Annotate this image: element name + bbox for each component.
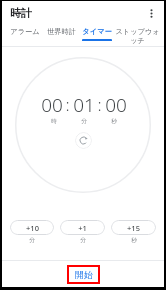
staticText: 時計 — [10, 6, 32, 20]
staticText: 00 — [41, 92, 63, 118]
button[interactable]: 世界時計 — [43, 25, 79, 46]
staticText: アラーム — [10, 27, 40, 36]
button[interactable]: +1 — [60, 220, 105, 235]
button[interactable]: More options — [142, 4, 160, 22]
staticText: 01 — [73, 92, 95, 118]
button[interactable]: タイマー — [79, 25, 115, 46]
staticText: 00 — [105, 92, 127, 118]
button[interactable]: Reset timer — [75, 132, 92, 149]
staticText: +1 — [78, 223, 87, 233]
button[interactable]: 開始 — [67, 265, 100, 284]
staticText: : — [97, 93, 102, 116]
staticText: 分 — [29, 237, 35, 244]
button[interactable]: ストップウォッチ — [115, 25, 160, 46]
button[interactable]: +10 — [10, 220, 54, 235]
staticText: 秒 — [131, 237, 137, 244]
staticText: ストップウォッチ — [115, 27, 160, 45]
staticText: +15 — [127, 223, 140, 233]
staticText: タイマー — [82, 27, 112, 36]
staticText: 時 — [51, 118, 57, 125]
staticText: 世界時計 — [47, 27, 76, 36]
button[interactable]: +15 — [111, 220, 156, 235]
staticText: 分 — [80, 237, 86, 244]
staticText: : — [65, 93, 70, 116]
button[interactable]: アラーム — [6, 25, 43, 46]
staticText: 開始 — [75, 269, 93, 280]
staticText: 分 — [81, 118, 87, 125]
staticText: +10 — [26, 223, 39, 233]
staticText: 秒 — [111, 118, 117, 125]
